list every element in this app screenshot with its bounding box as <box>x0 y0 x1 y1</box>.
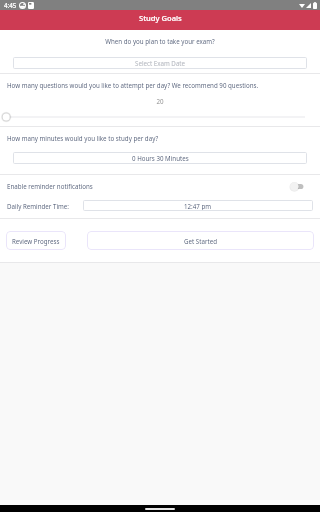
staticText: Review Progress <box>12 237 60 245</box>
staticText: 20 <box>0 97 320 105</box>
staticText: How many minutes would you like to study… <box>7 134 159 142</box>
staticText: 4:45 <box>4 1 17 9</box>
staticText: Select Exam Date <box>135 59 186 67</box>
button[interactable]: Select Exam Date <box>13 57 307 69</box>
button[interactable]: Get Started <box>87 231 314 250</box>
button[interactable]: 12:47 pm <box>83 200 313 211</box>
other: Enable reminder notifications toggle <box>290 182 304 191</box>
staticText: 0 Hours 30 Minutes <box>132 154 189 162</box>
button[interactable]: Review Progress <box>6 231 66 250</box>
staticText: Study Goals <box>139 13 182 23</box>
staticText: Get Started <box>184 237 218 245</box>
button[interactable]: Enable reminder notifications <box>0 179 320 193</box>
staticText: 12:47 pm <box>184 202 212 210</box>
button[interactable]: 0 Hours 30 Minutes <box>13 152 307 164</box>
button[interactable]: Questions per day <box>0 111 320 123</box>
staticText: Daily Reminder Time: <box>7 202 69 210</box>
staticText: Enable reminder notifications <box>7 182 93 190</box>
staticText: When do you plan to take your exam? <box>0 37 320 45</box>
staticText: How many questions would you like to att… <box>7 81 259 89</box>
